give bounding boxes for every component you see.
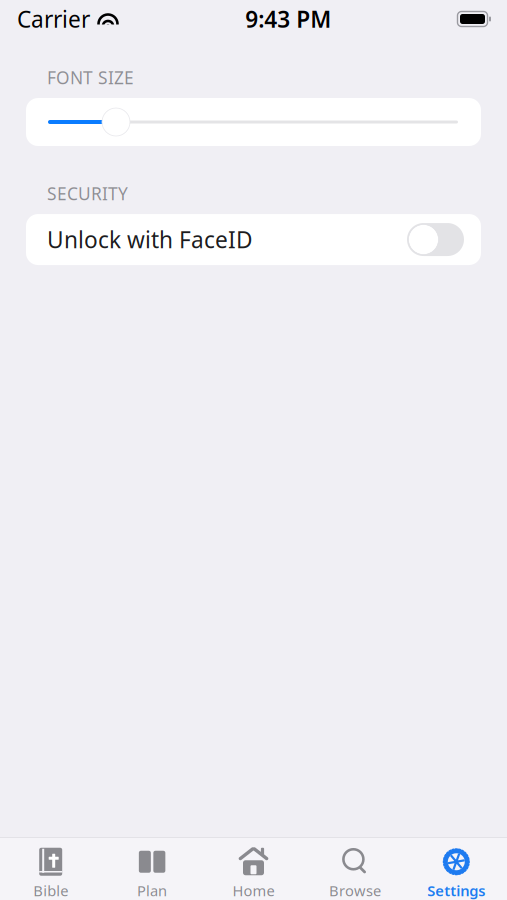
staticText: Carrier bbox=[17, 4, 90, 34]
staticText: FONT SIZE bbox=[47, 66, 134, 89]
button[interactable]: Home bbox=[203, 847, 304, 899]
staticText: 9:43 PM bbox=[245, 4, 331, 34]
staticText: Unlock with FaceID bbox=[47, 224, 253, 255]
staticText: Plan bbox=[137, 881, 167, 900]
staticText: SECURITY bbox=[47, 182, 128, 205]
button[interactable]: Bible bbox=[0, 847, 101, 899]
button[interactable]: Plan bbox=[101, 847, 203, 899]
staticText: Home bbox=[232, 881, 274, 900]
staticText: Bible bbox=[33, 881, 68, 900]
button[interactable]: Settings bbox=[406, 847, 507, 899]
staticText: Browse bbox=[329, 881, 381, 900]
button[interactable]: Unlock with FaceID bbox=[26, 214, 481, 265]
staticText: Settings bbox=[427, 881, 485, 900]
button[interactable]: Browse bbox=[304, 847, 406, 899]
